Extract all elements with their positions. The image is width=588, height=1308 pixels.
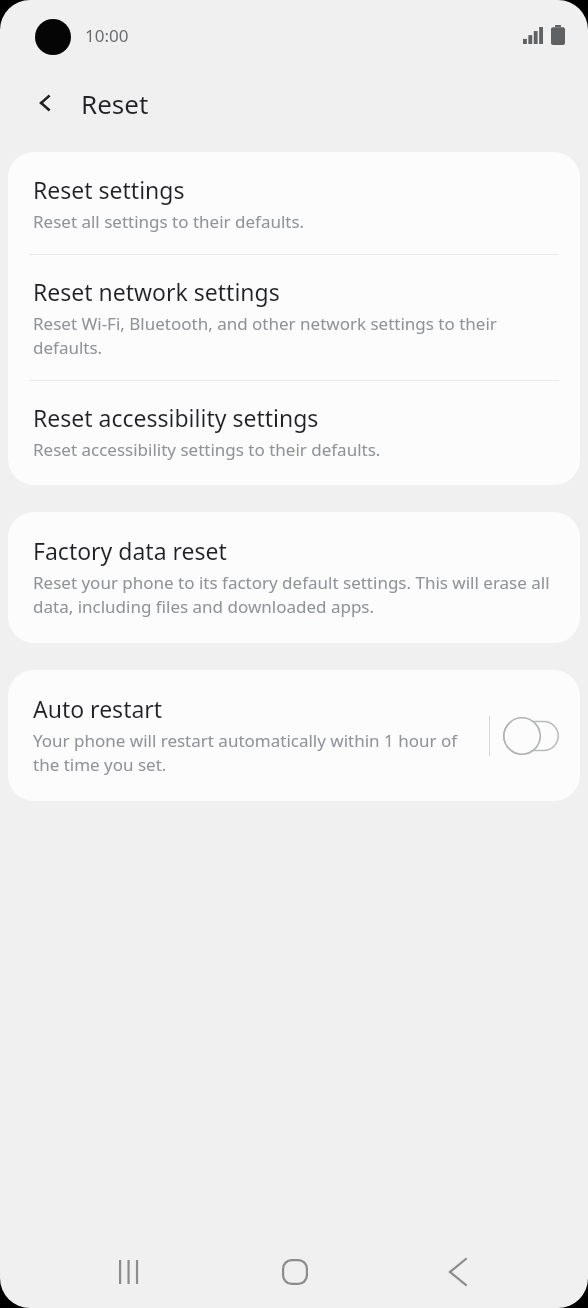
button[interactable]: Auto restart xyxy=(8,670,489,801)
staticText: Reset network settings xyxy=(33,276,280,307)
button[interactable]: Factory data reset xyxy=(8,512,580,643)
button[interactable]: Auto restart toggle, off xyxy=(500,708,562,764)
button[interactable]: Back xyxy=(22,79,70,127)
staticText: Your phone will restart automatically wi… xyxy=(33,729,481,776)
button[interactable]: Recent apps xyxy=(98,1240,162,1304)
button[interactable]: Reset accessibility settings xyxy=(8,381,580,485)
button[interactable]: Reset settings xyxy=(8,152,580,254)
staticText: Factory data reset xyxy=(33,535,227,566)
staticText: Reset settings xyxy=(33,174,185,205)
staticText: Reset Wi-Fi, Bluetooth, and other networ… xyxy=(33,312,555,359)
button[interactable]: Home xyxy=(263,1240,327,1304)
button[interactable]: Back xyxy=(426,1240,490,1304)
staticText: Reset your phone to its factory default … xyxy=(33,571,555,618)
staticText: Reset all settings to their defaults. xyxy=(33,210,305,233)
staticText: Auto restart xyxy=(33,693,163,724)
staticText: Reset accessibility settings xyxy=(33,402,319,433)
staticText: Reset accessibility settings to their de… xyxy=(33,438,381,461)
button[interactable]: Reset network settings xyxy=(8,255,580,380)
staticText: 10:00 xyxy=(85,24,129,47)
staticText: Reset xyxy=(81,86,149,121)
